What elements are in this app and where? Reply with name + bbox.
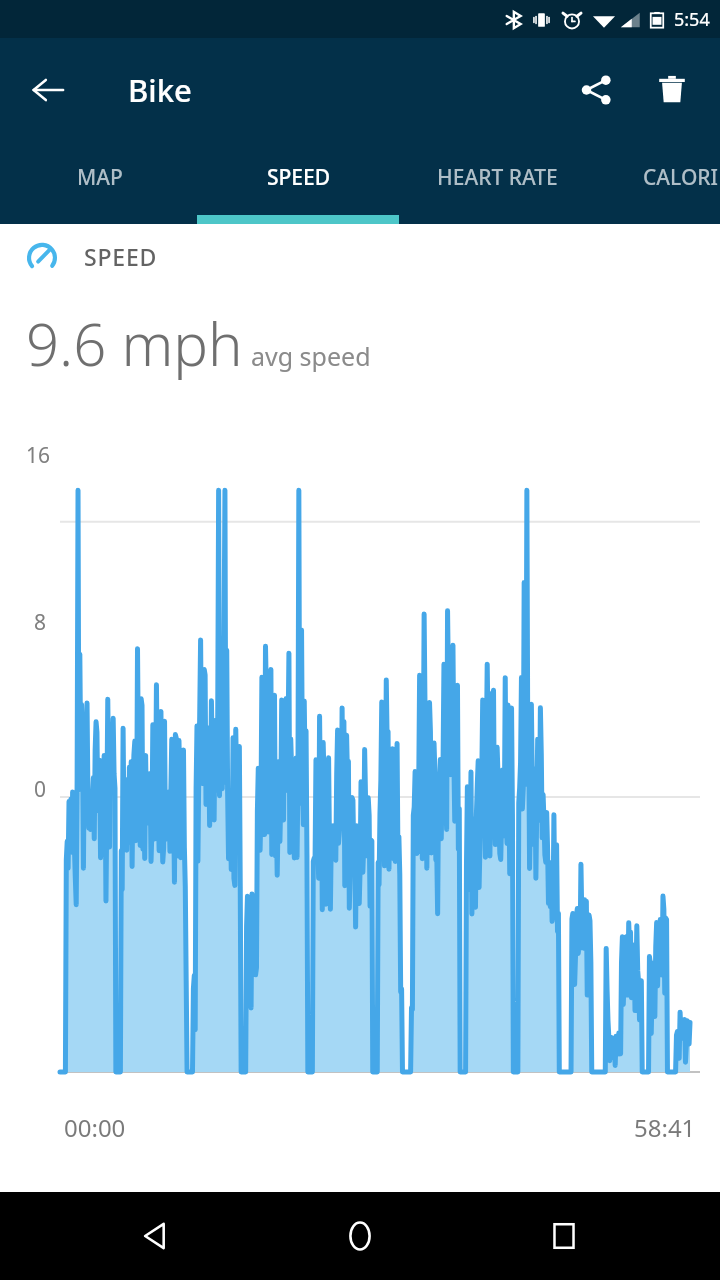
staticText: MAP [77, 163, 123, 192]
button[interactable]: Back [108, 1192, 204, 1280]
staticText: 58:41 [634, 1111, 696, 1144]
staticText: CALORIES [643, 163, 720, 192]
button[interactable]: HEART RATE [398, 142, 597, 224]
staticText: 8 [34, 608, 47, 637]
staticText: Bike [128, 69, 192, 111]
staticText: 9.6 mph [26, 304, 243, 383]
staticText: SPEED [84, 241, 158, 272]
staticText: HEART RATE [437, 163, 558, 192]
button[interactable]: Recent apps [516, 1192, 612, 1280]
staticText: SPEED [267, 163, 331, 192]
button[interactable]: Share [558, 52, 634, 128]
staticText: 16 [26, 441, 51, 470]
staticText: 5:54 [674, 7, 710, 32]
button[interactable]: CALORIES [593, 142, 720, 224]
button[interactable]: Home [312, 1192, 408, 1280]
button[interactable]: Navigate up [12, 54, 84, 126]
staticText: 00:00 [64, 1111, 126, 1144]
staticText: 0 [34, 775, 47, 804]
staticText: avg speed [251, 339, 371, 373]
button[interactable]: Delete [634, 52, 710, 128]
button[interactable]: SPEED [199, 142, 398, 224]
button[interactable]: MAP [0, 142, 199, 224]
